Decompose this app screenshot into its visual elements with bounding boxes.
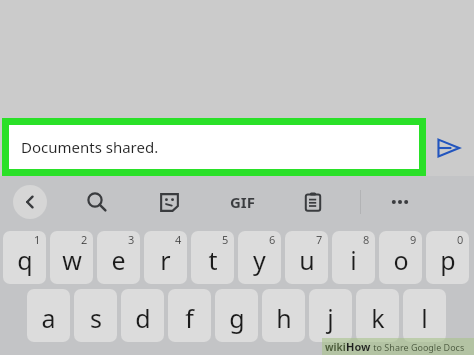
button[interactable]: t [191, 231, 234, 284]
staticText: j [327, 301, 334, 335]
button[interactable]: Send [430, 130, 466, 166]
staticText: 1 [34, 232, 41, 247]
button[interactable]: GIF [220, 183, 264, 221]
button[interactable]: l [403, 289, 446, 342]
button[interactable]: Documents shared. [2, 118, 426, 176]
button[interactable]: Back [13, 185, 47, 219]
staticText: 2 [81, 232, 88, 247]
staticText: 4 [175, 232, 182, 247]
staticText: k [371, 301, 385, 335]
staticText: f [185, 301, 194, 335]
button[interactable]: k [356, 289, 399, 342]
button[interactable]: Search [78, 183, 116, 221]
staticText: r [160, 243, 171, 277]
staticText: 8 [363, 232, 370, 247]
button[interactable]: Stickers [150, 183, 188, 221]
staticText: e [111, 243, 126, 277]
staticText: 9 [410, 232, 417, 247]
staticText: 7 [316, 232, 323, 247]
button[interactable]: d [121, 289, 164, 342]
staticText: l [421, 301, 428, 335]
button[interactable]: y [238, 231, 281, 284]
staticText: How [346, 339, 371, 354]
staticText: a [41, 301, 56, 335]
staticText: p [440, 243, 456, 277]
staticText: h [276, 301, 292, 335]
button[interactable]: s [74, 289, 117, 342]
staticText: d [135, 301, 151, 335]
button[interactable]: e [97, 231, 140, 284]
staticText: GIF [230, 192, 255, 212]
staticText: 3 [128, 232, 135, 247]
button[interactable]: More options [381, 183, 419, 221]
button[interactable]: a [27, 289, 70, 342]
staticText: i [350, 243, 357, 277]
button[interactable]: i [332, 231, 375, 284]
staticText: t [208, 243, 218, 277]
staticText: w [62, 243, 82, 277]
button[interactable]: o [379, 231, 422, 284]
button[interactable]: Clipboard [294, 183, 332, 221]
staticText: 0 [457, 232, 464, 247]
button[interactable]: f [168, 289, 211, 342]
button[interactable]: g [215, 289, 258, 342]
staticText: u [299, 243, 315, 277]
staticText: g [229, 301, 245, 335]
staticText: y [253, 243, 266, 277]
button[interactable]: u [285, 231, 328, 284]
button[interactable]: r [144, 231, 187, 284]
staticText: o [393, 243, 409, 277]
staticText: to Share Google Docs [371, 341, 465, 353]
button[interactable]: j [309, 289, 352, 342]
staticText: s [90, 301, 102, 335]
staticText: Documents shared. [21, 137, 159, 157]
button[interactable]: w [50, 231, 93, 284]
button[interactable]: q [3, 231, 46, 284]
staticText: wiki [325, 340, 346, 354]
staticText: 5 [222, 232, 229, 247]
button[interactable]: p [426, 231, 469, 284]
staticText: 6 [269, 232, 276, 247]
button[interactable]: h [262, 289, 305, 342]
staticText: q [17, 243, 33, 277]
